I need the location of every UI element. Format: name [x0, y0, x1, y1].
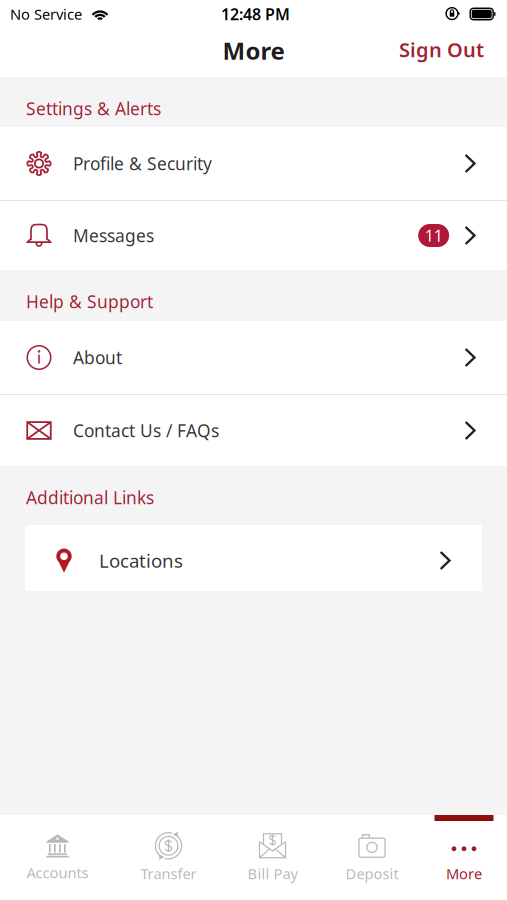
- staticText: Bill Pay: [247, 864, 297, 883]
- staticText: No Service: [10, 4, 82, 24]
- staticText: Contact Us / FAQs: [73, 419, 219, 442]
- button[interactable]: Accounts: [0, 815, 115, 900]
- staticText: More: [446, 864, 482, 883]
- staticText: Transfer: [140, 864, 196, 883]
- button[interactable]: Sign Out: [389, 32, 494, 73]
- staticText: Accounts: [26, 863, 88, 882]
- button[interactable]: Locations: [25, 525, 482, 591]
- staticText: Locations: [99, 548, 183, 573]
- button[interactable]: Deposit: [323, 815, 421, 900]
- staticText: 12:48 PM: [221, 3, 290, 25]
- staticText: 11: [425, 225, 443, 246]
- staticText: Help & Support: [26, 290, 153, 313]
- staticText: About: [73, 346, 122, 369]
- staticText: Profile & Security: [73, 152, 212, 175]
- button[interactable]: About: [0, 321, 507, 394]
- button[interactable]: Bill Pay: [222, 815, 323, 900]
- staticText: Additional Links: [26, 486, 154, 509]
- button[interactable]: Profile & Security: [0, 127, 507, 200]
- button[interactable]: Messages: [0, 201, 507, 270]
- button[interactable]: Contact Us / FAQs: [0, 395, 507, 466]
- button[interactable]: Transfer: [115, 815, 222, 900]
- staticText: Settings & Alerts: [26, 97, 161, 120]
- staticText: Messages: [73, 224, 154, 247]
- staticText: Deposit: [345, 864, 398, 883]
- staticText: Sign Out: [399, 36, 484, 63]
- staticText: More: [222, 35, 284, 66]
- button[interactable]: More: [421, 815, 507, 900]
